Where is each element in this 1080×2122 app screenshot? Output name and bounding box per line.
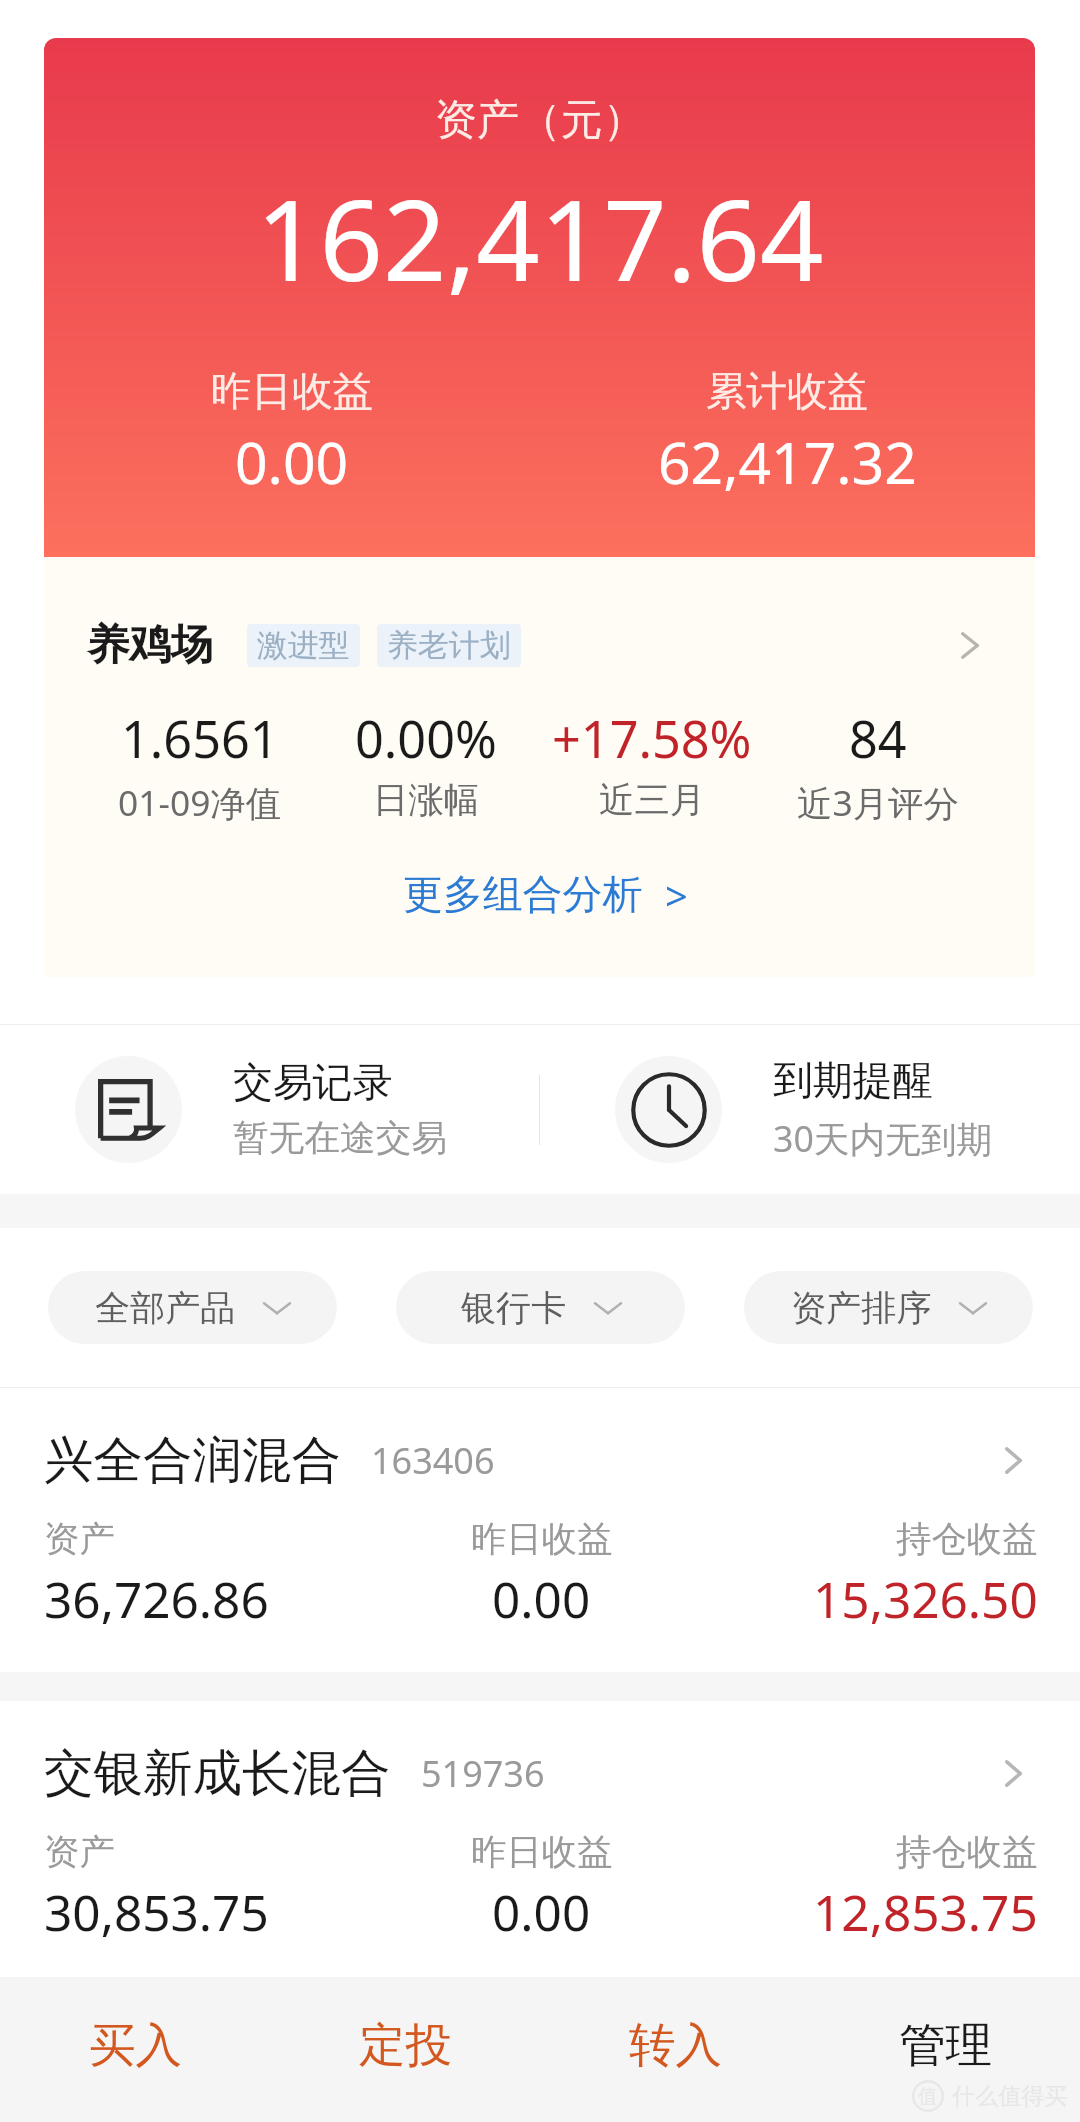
staticText: 银行卡 — [461, 1286, 567, 1330]
button[interactable]: 定投 — [270, 1977, 540, 2122]
button[interactable]: 交银新成长混合 — [0, 1701, 1080, 1977]
staticText: 养老计划 — [387, 626, 511, 665]
staticText: 30,853.75 — [44, 1878, 269, 1945]
staticText: 管理 — [899, 2016, 992, 2075]
staticText: 昨日收益 — [211, 366, 373, 417]
staticText: 163406 — [371, 1436, 495, 1485]
staticText: 1.6561 — [121, 704, 279, 773]
button[interactable]: 兴全合润混合 — [0, 1388, 1080, 1672]
staticText: 519736 — [421, 1749, 545, 1798]
staticText: 0.00 — [492, 1565, 591, 1632]
staticText: 转入 — [629, 2016, 722, 2075]
staticText: 交银新成长混合 — [44, 1742, 391, 1804]
staticText: 84 — [849, 704, 907, 773]
staticText: 值 — [918, 2084, 938, 2109]
button[interactable]: 银行卡 — [396, 1271, 685, 1344]
staticText: 日涨幅 — [373, 778, 480, 823]
button[interactable]: 全部产品 — [48, 1271, 337, 1344]
staticText: 12,853.75 — [813, 1878, 1038, 1945]
staticText: 近三月 — [599, 778, 706, 823]
staticText: 15,326.50 — [813, 1565, 1038, 1632]
staticText: 累计收益 — [706, 366, 868, 417]
staticText: 资产 — [44, 1830, 115, 1875]
staticText: 资产 — [44, 1517, 115, 1562]
button[interactable]: 转入 — [540, 1977, 810, 2122]
staticText: 到期提醒 — [773, 1056, 933, 1106]
staticText: 持仓收益 — [896, 1830, 1038, 1875]
staticText: 30天内无到期 — [773, 1114, 993, 1163]
staticText: 兴全合润混合 — [44, 1429, 341, 1491]
button[interactable]: 交易记录 — [0, 1025, 539, 1194]
staticText: 更多组合分析 — [403, 870, 643, 920]
staticText: +17.58% — [552, 704, 752, 773]
staticText: 暂无在途交易 — [233, 1116, 448, 1161]
staticText: 买入 — [89, 2016, 182, 2075]
staticText: 资产排序 — [791, 1286, 932, 1330]
button[interactable]: 查看组合详情 — [940, 615, 1000, 675]
button[interactable]: 更多组合分析 — [87, 868, 1003, 922]
button[interactable]: 管理 — [810, 1977, 1080, 2122]
staticText: 62,417.32 — [658, 423, 917, 501]
staticText: 0.00% — [355, 704, 497, 773]
staticText: 全部产品 — [95, 1286, 236, 1330]
staticText: 养鸡场 — [87, 619, 213, 672]
staticText: 资产（元） — [435, 94, 645, 147]
staticText: 定投 — [359, 2016, 452, 2075]
staticText: 什么值得买 — [952, 2082, 1068, 2111]
button[interactable]: 到期提醒 — [540, 1025, 1080, 1194]
staticText: 36,726.86 — [44, 1565, 269, 1632]
staticText: 01-09净值 — [118, 778, 282, 826]
button[interactable]: 买入 — [0, 1977, 270, 2122]
staticText: > — [665, 868, 688, 922]
staticText: 交易记录 — [233, 1058, 393, 1108]
staticText: 昨日收益 — [471, 1830, 613, 1875]
staticText: 0.00 — [492, 1878, 591, 1945]
staticText: 持仓收益 — [896, 1517, 1038, 1562]
button[interactable]: 资产排序 — [744, 1271, 1033, 1344]
staticText: 162,417.64 — [256, 162, 824, 313]
staticText: 昨日收益 — [471, 1517, 613, 1562]
staticText: 0.00 — [235, 423, 349, 501]
staticText: 激进型 — [257, 626, 350, 665]
staticText: 近3月评分 — [797, 778, 959, 826]
